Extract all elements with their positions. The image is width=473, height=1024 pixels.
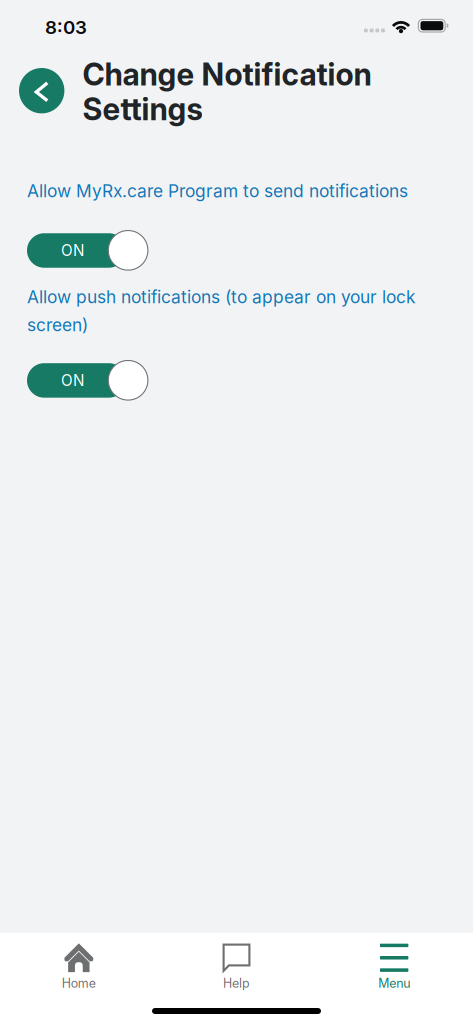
staticText: ON xyxy=(61,371,84,390)
staticText: Menu xyxy=(378,976,410,991)
staticText: Change Notification xyxy=(82,56,371,93)
button[interactable]: Back xyxy=(19,68,64,113)
button[interactable]: Notifications on xyxy=(27,360,148,400)
button[interactable]: Menu xyxy=(315,943,473,991)
staticText: Help xyxy=(223,976,250,991)
button[interactable]: Home xyxy=(0,943,158,991)
staticText: Allow push notifications (to appear on y… xyxy=(27,286,416,335)
staticText: 8:03 xyxy=(45,16,87,39)
staticText: Allow MyRx.care Program to send notifica… xyxy=(27,181,408,202)
staticText: ON xyxy=(61,241,84,260)
staticText: Home xyxy=(62,976,96,991)
staticText: Settings xyxy=(82,91,202,128)
button[interactable]: Help xyxy=(158,943,315,991)
button[interactable]: Notifications on xyxy=(27,230,148,270)
